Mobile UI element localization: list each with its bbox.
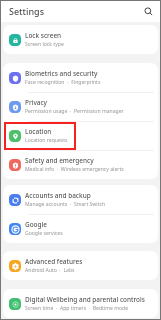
staticText: Advanced features bbox=[25, 257, 83, 266]
staticText: Google bbox=[25, 220, 47, 229]
staticText: Permission usage · Permission manager bbox=[25, 108, 124, 115]
button[interactable]: Advanced features bbox=[3, 251, 158, 280]
button[interactable]: Digital Wellbeing and parental controls bbox=[3, 289, 158, 318]
staticText: Medical info · Wireless emergency alerts bbox=[25, 166, 124, 173]
staticText: Lock screen bbox=[25, 31, 62, 40]
staticText: Privacy bbox=[25, 98, 48, 107]
button[interactable]: Privacy bbox=[3, 92, 158, 121]
staticText: Google services bbox=[25, 230, 63, 237]
button[interactable]: Google bbox=[3, 214, 158, 243]
staticText: Biometrics and security bbox=[25, 69, 98, 78]
button[interactable]: Search bbox=[141, 4, 155, 18]
button[interactable]: Location bbox=[3, 121, 158, 150]
staticText: Safety and emergency bbox=[25, 156, 94, 165]
staticText: Android Auto · Labs bbox=[25, 267, 75, 274]
staticText: Screen time · App timers · Bedtime mode bbox=[25, 305, 129, 312]
button[interactable]: Accounts and backup bbox=[3, 185, 158, 214]
button[interactable]: Safety and emergency bbox=[3, 150, 158, 179]
staticText: Location bbox=[25, 127, 52, 136]
button[interactable]: Biometrics and security bbox=[3, 63, 158, 92]
staticText: Screen lock type bbox=[25, 41, 64, 48]
button[interactable]: Lock screen bbox=[3, 25, 158, 54]
staticText: Digital Wellbeing and parental controls bbox=[25, 295, 145, 304]
staticText: Settings bbox=[9, 5, 45, 17]
staticText: Location requests bbox=[25, 137, 68, 144]
staticText: Face recognition · Fingerprints bbox=[25, 79, 101, 86]
staticText: Accounts and backup bbox=[25, 191, 91, 200]
staticText: Manage accounts · Smart Switch bbox=[25, 201, 106, 208]
